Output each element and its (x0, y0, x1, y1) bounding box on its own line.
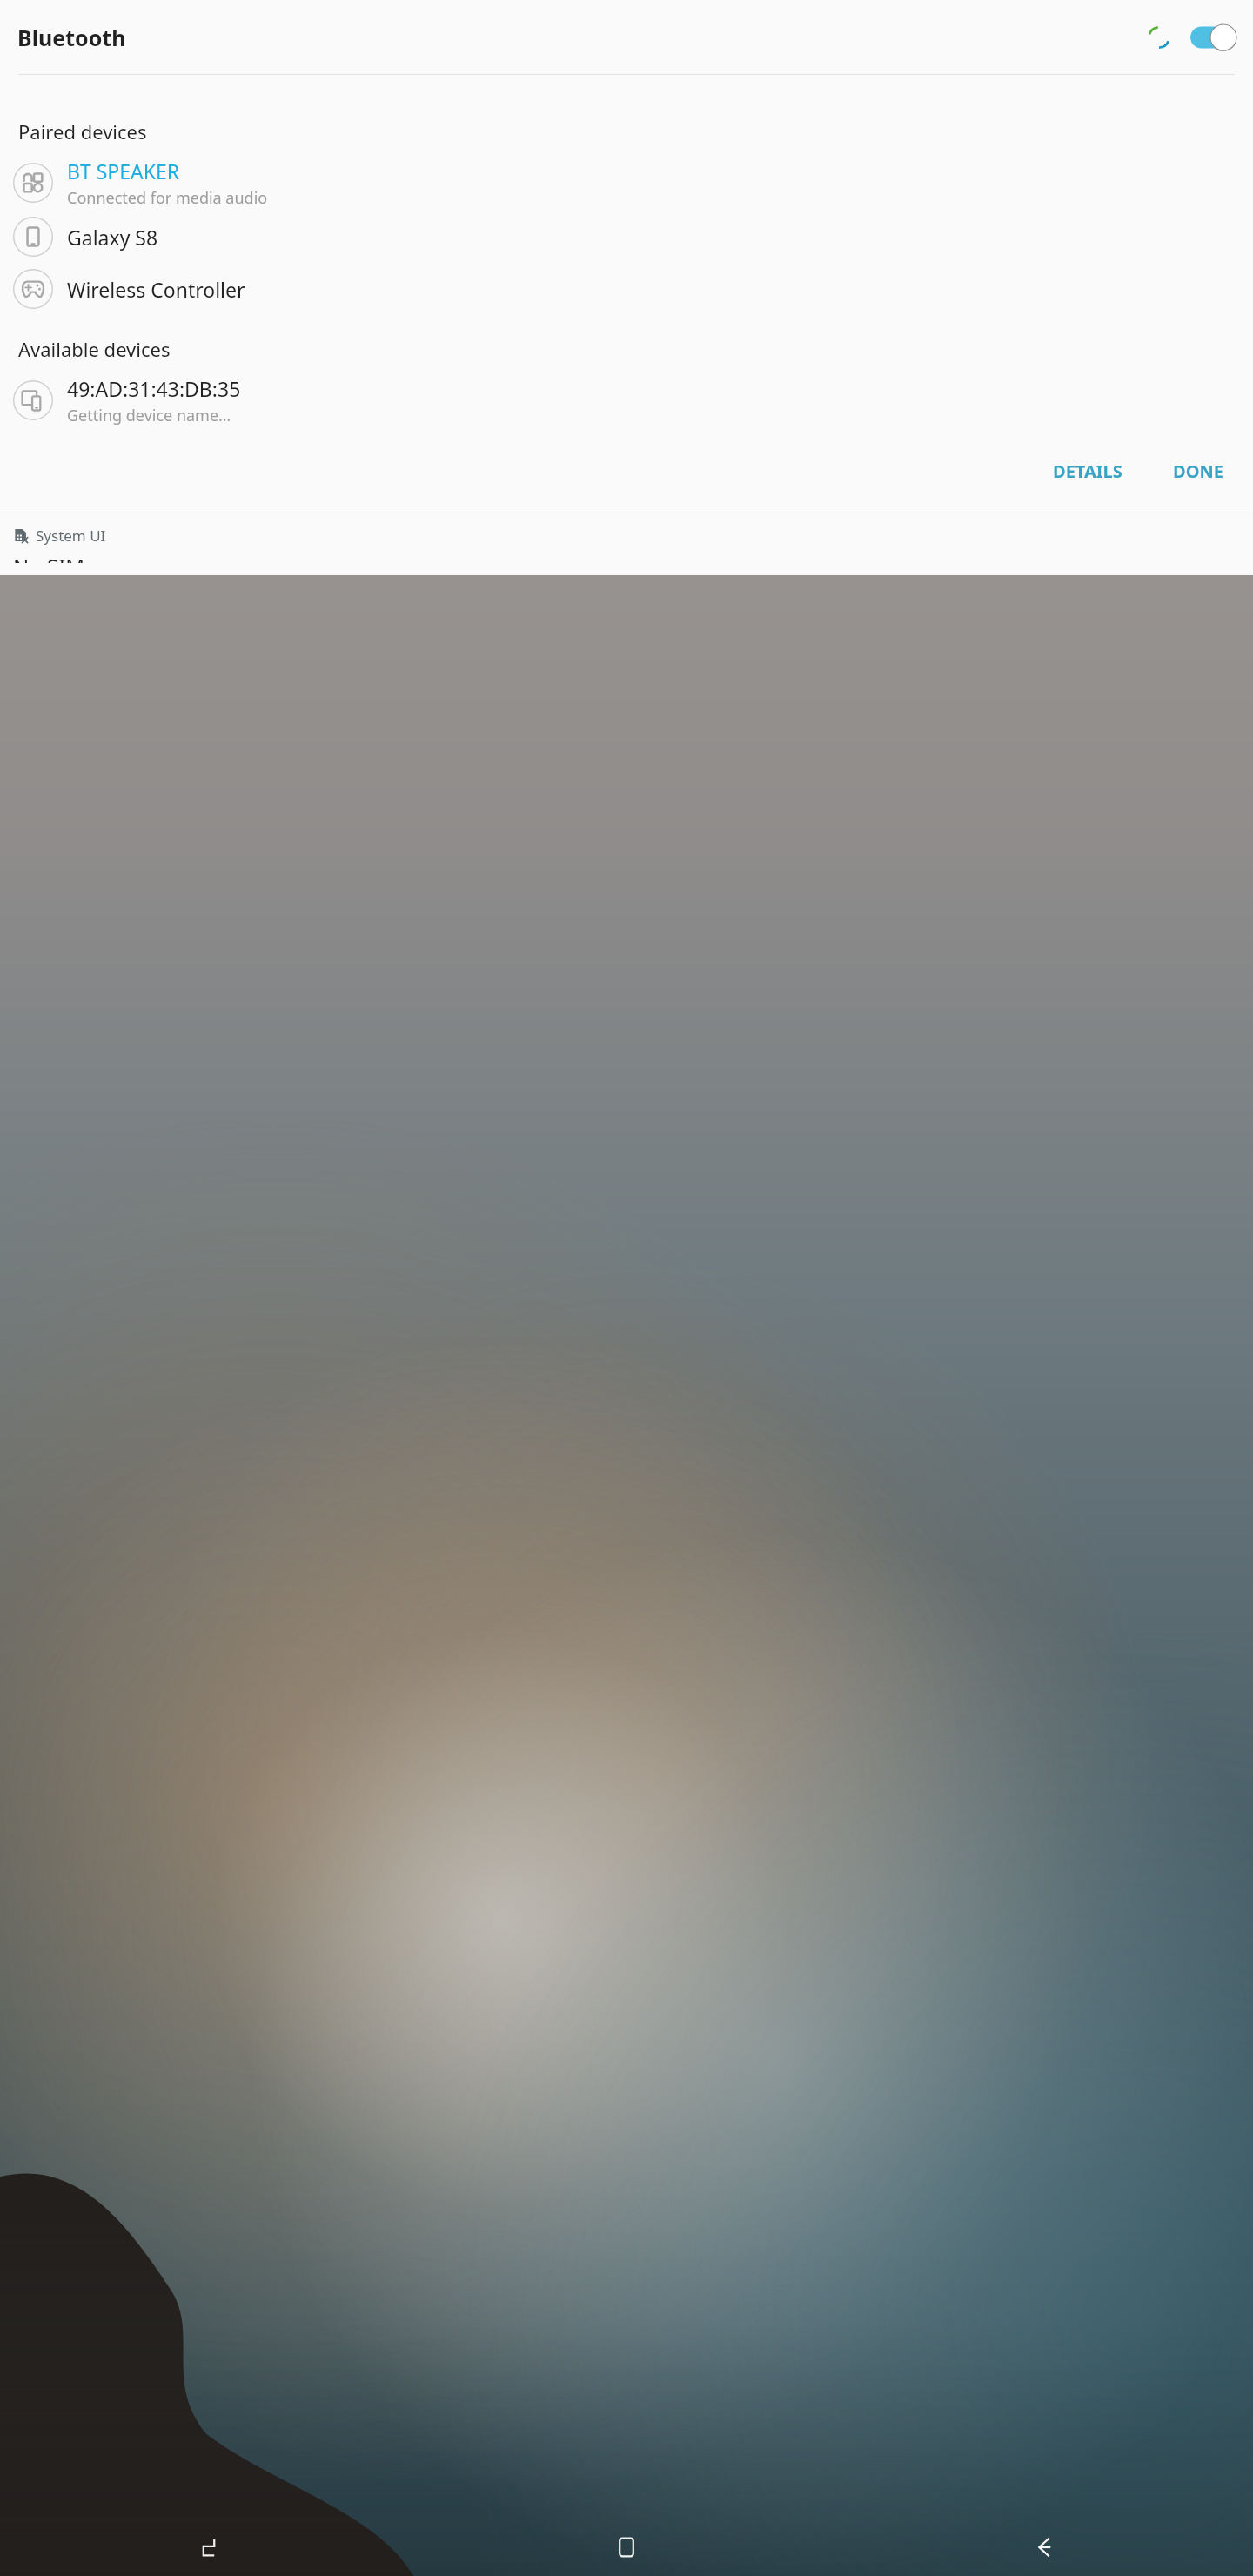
button[interactable]: Back (835, 2519, 1253, 2576)
staticText: Paired devices (18, 118, 147, 144)
button[interactable]: Recents (0, 2519, 418, 2576)
staticText: 49:AD:31:43:DB:35 (67, 375, 241, 402)
button[interactable]: Galaxy S8 (0, 211, 1253, 263)
button[interactable]: Home (418, 2519, 835, 2576)
button[interactable]: Bluetooth on (1190, 23, 1237, 51)
button[interactable]: BT SPEAKER (0, 155, 1253, 211)
staticText: No SIM (13, 552, 85, 563)
staticText: System UI (36, 526, 106, 546)
button[interactable]: DETAILS (1037, 449, 1138, 493)
button[interactable]: Wireless Controller (0, 263, 1253, 315)
button[interactable]: DONE (1157, 449, 1239, 493)
button[interactable]: 49:AD:31:43:DB:35 (0, 372, 1253, 428)
staticText: BT SPEAKER (67, 158, 180, 184)
button[interactable]: Phone (164, 368, 218, 422)
staticText: DETAILS (1053, 460, 1122, 483)
staticText: Getting device name… (67, 405, 231, 426)
button[interactable]: System UI (0, 513, 1253, 575)
staticText: DONE (1173, 460, 1223, 483)
staticText: Galaxy S8 (67, 224, 158, 251)
staticText: Available devices (18, 336, 171, 362)
staticText: Wireless Controller (67, 276, 245, 303)
button[interactable]: Slack (158, 292, 219, 364)
staticText: Bluetooth (17, 23, 126, 52)
staticText: Connected for media audio (67, 187, 268, 209)
